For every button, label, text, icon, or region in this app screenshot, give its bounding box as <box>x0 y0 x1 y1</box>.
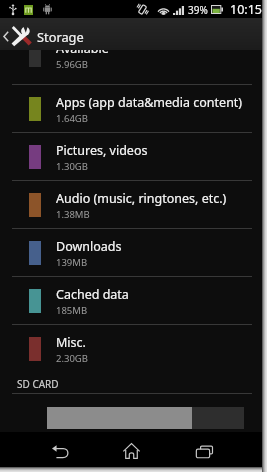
staticText: Audio (music, ringtones, etc.) <box>56 190 227 207</box>
staticText: Pictures, videos <box>56 142 148 159</box>
button[interactable]: Downloads <box>0 229 262 277</box>
staticText: 10:15 <box>230 1 262 18</box>
other: Back <box>3 31 9 42</box>
button[interactable]: Cached data <box>0 277 262 325</box>
staticText: Storage <box>37 28 84 45</box>
staticText: 1.38MB <box>56 208 90 221</box>
staticText: 139MB <box>56 256 88 269</box>
button[interactable]: Available <box>0 50 262 85</box>
staticText: Apps (app data&media content) <box>56 94 243 111</box>
staticText: Available <box>56 50 109 57</box>
staticText: 1.30GB <box>56 160 88 173</box>
button[interactable]: Home <box>96 432 167 467</box>
staticText: Misc. <box>56 334 86 351</box>
button[interactable]: Back <box>0 18 262 50</box>
staticText: Downloads <box>56 238 122 255</box>
button[interactable]: Back <box>25 432 96 467</box>
staticText: SD CARD <box>17 377 59 391</box>
staticText: 5.96GB <box>56 58 88 71</box>
staticText: Cached data <box>56 286 129 303</box>
staticText: 39% <box>188 3 208 17</box>
staticText: 2.30GB <box>56 352 88 365</box>
staticText: 185MB <box>56 304 88 317</box>
button[interactable]: Apps (app data&media content) <box>0 85 262 133</box>
button[interactable]: Pictures, videos <box>0 133 262 181</box>
staticText: 1.64GB <box>56 112 88 125</box>
button[interactable]: Audio (music, ringtones, etc.) <box>0 181 262 229</box>
button[interactable]: Recent apps <box>167 432 238 467</box>
button[interactable]: Misc. <box>0 325 262 373</box>
